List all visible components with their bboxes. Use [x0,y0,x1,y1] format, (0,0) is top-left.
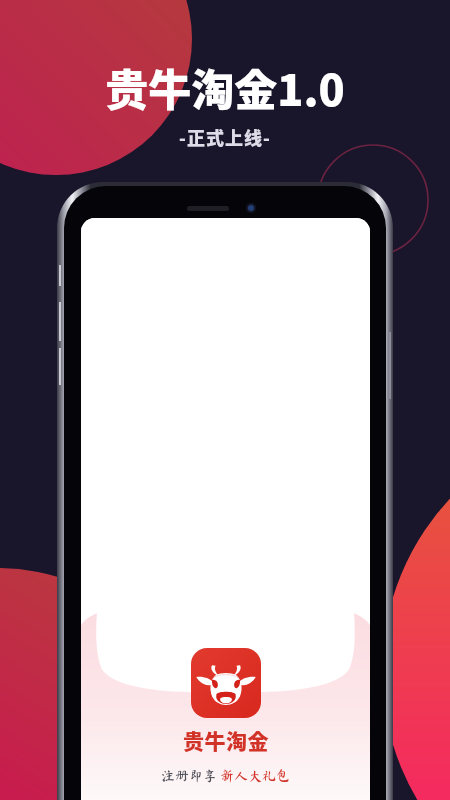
staticText: 新人大礼包 [220,769,290,783]
staticText: -正式上线- [179,124,271,150]
staticText: 注册即享 [161,769,220,783]
staticText: 贵牛淘金1.0 [105,56,345,118]
button[interactable] [191,648,261,718]
staticText: 贵牛淘金 [183,725,269,755]
